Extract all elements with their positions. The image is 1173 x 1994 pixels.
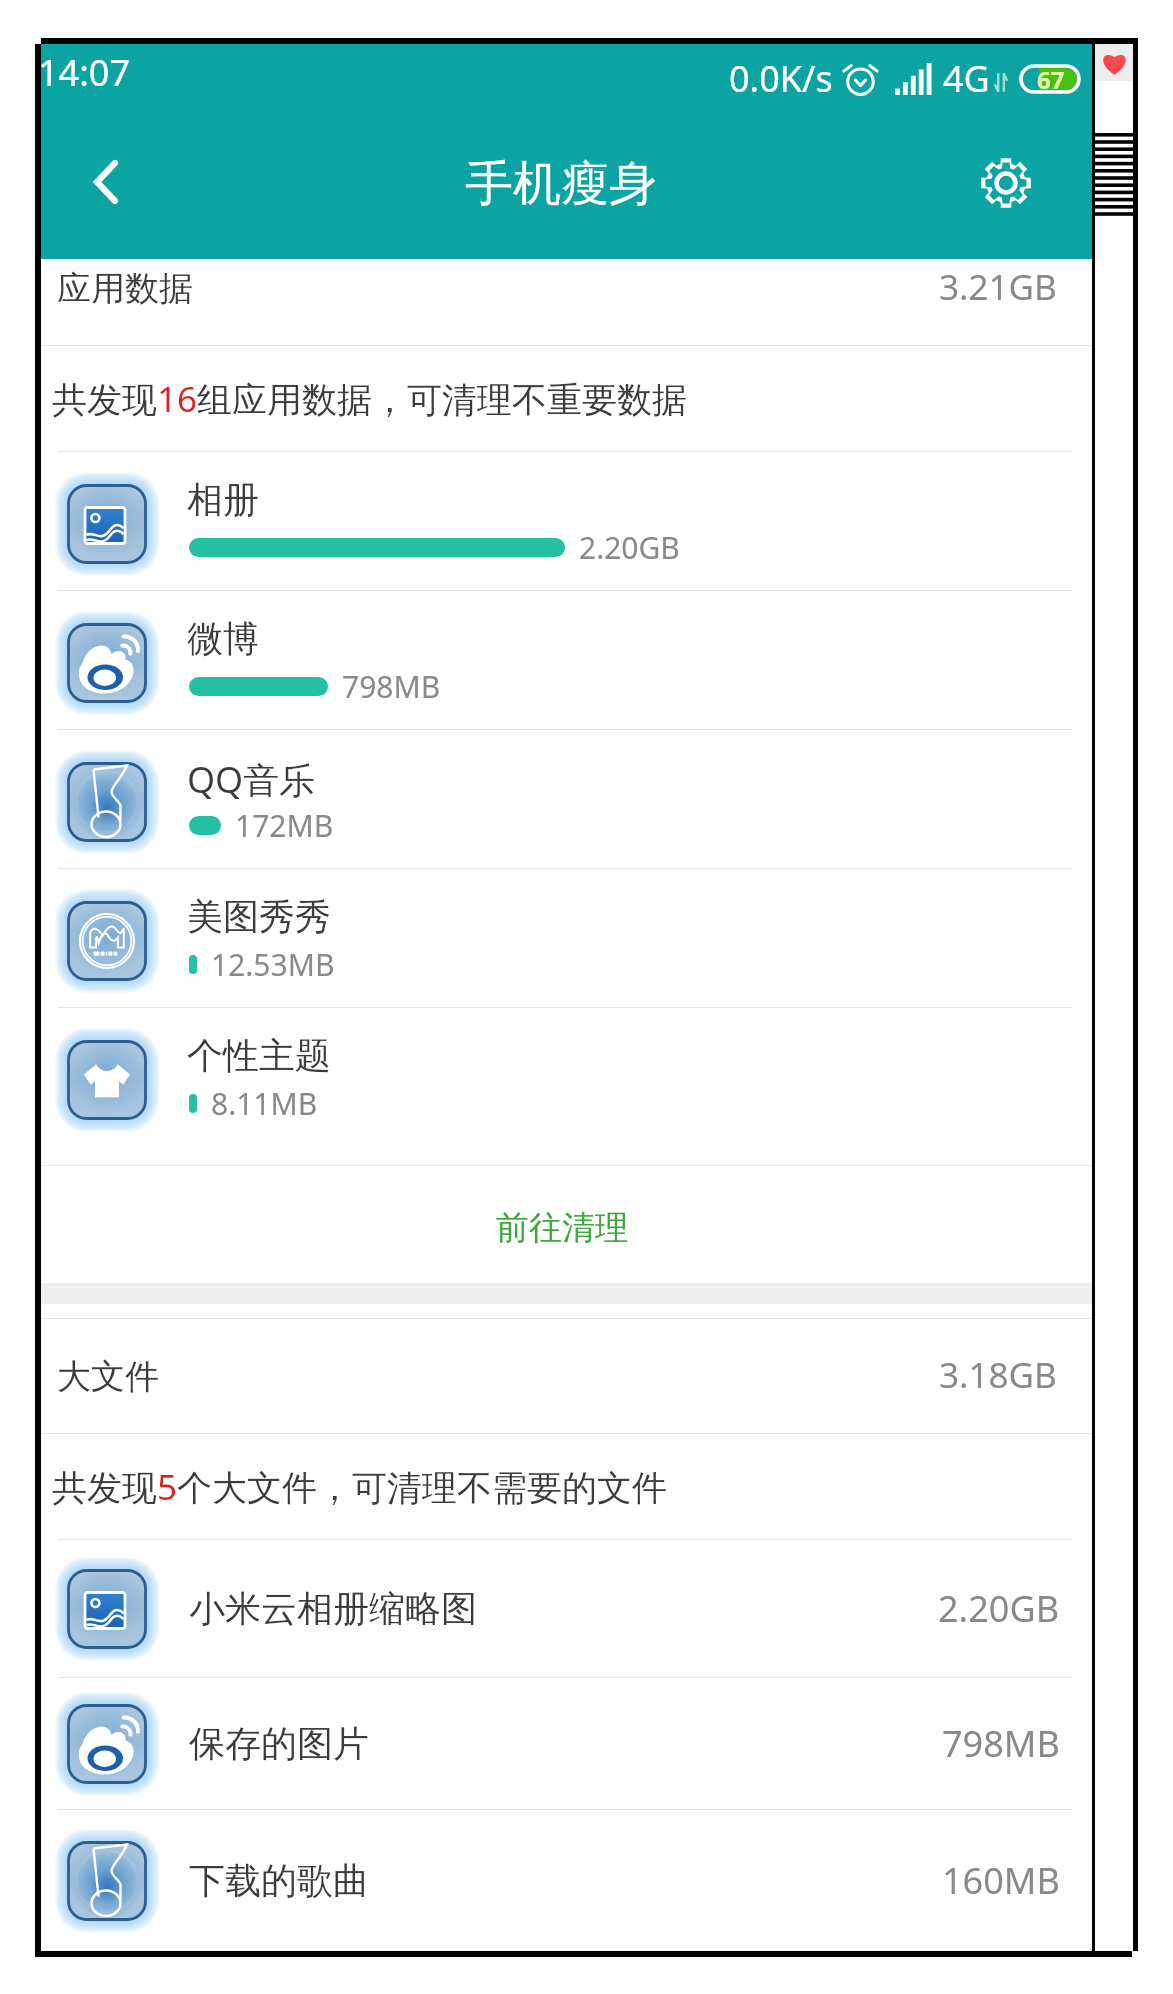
- button[interactable]: 微博: [41, 591, 1092, 729]
- staticText: 3.21GB: [939, 263, 1057, 311]
- staticText: 下载的歌曲: [189, 1858, 369, 1903]
- staticText: QQ音乐: [187, 755, 316, 804]
- button[interactable]: 个性主题: [41, 1008, 1092, 1165]
- staticText: 2.20GB: [938, 1584, 1060, 1633]
- staticText: 160MB: [942, 1856, 1060, 1905]
- staticText: 共发现16组应用数据，可清理不重要数据: [52, 375, 688, 423]
- button[interactable]: 相册: [41, 452, 1092, 590]
- staticText: 4G: [943, 54, 990, 103]
- staticText: 67: [1037, 63, 1065, 93]
- staticText: 保存的图片: [189, 1721, 369, 1766]
- button[interactable]: 保存的图片: [41, 1678, 1092, 1809]
- staticText: 前往清理: [496, 1207, 628, 1249]
- staticText: 172MB: [235, 805, 334, 846]
- staticText: 0.0K/s: [729, 54, 833, 103]
- button[interactable]: QQ音乐: [41, 730, 1092, 868]
- staticText: 美图秀秀: [187, 894, 331, 939]
- staticText: 应用数据: [57, 267, 193, 310]
- button[interactable]: 前往清理: [41, 1166, 1092, 1283]
- staticText: 共发现5个大文件，可清理不需要的文件: [52, 1463, 668, 1511]
- staticText: 手机瘦身: [465, 154, 657, 214]
- staticText: 微博: [187, 616, 259, 661]
- button[interactable]: 大文件: [41, 1319, 1092, 1433]
- staticText: 个性主题: [187, 1033, 331, 1078]
- button[interactable]: Back: [41, 112, 176, 259]
- staticText: 3.18GB: [939, 1351, 1057, 1399]
- staticText: 2.20GB: [579, 527, 680, 568]
- button[interactable]: 小米云相册缩略图: [41, 1540, 1092, 1677]
- staticText: 相册: [187, 477, 259, 522]
- staticText: 12.53MB: [211, 944, 335, 985]
- staticText: 8.11MB: [211, 1083, 318, 1124]
- button[interactable]: 美图秀秀: [41, 869, 1092, 1007]
- button[interactable]: Settings: [952, 112, 1092, 259]
- staticText: 大文件: [57, 1355, 159, 1398]
- staticText: 798MB: [942, 1719, 1060, 1768]
- staticText: 14:07: [38, 48, 131, 97]
- button[interactable]: 应用数据: [41, 259, 1092, 345]
- staticText: 小米云相册缩略图: [189, 1586, 477, 1631]
- button[interactable]: 下载的歌曲: [41, 1810, 1092, 1951]
- staticText: 798MB: [342, 666, 441, 707]
- button[interactable]: Favorite: [1095, 44, 1133, 81]
